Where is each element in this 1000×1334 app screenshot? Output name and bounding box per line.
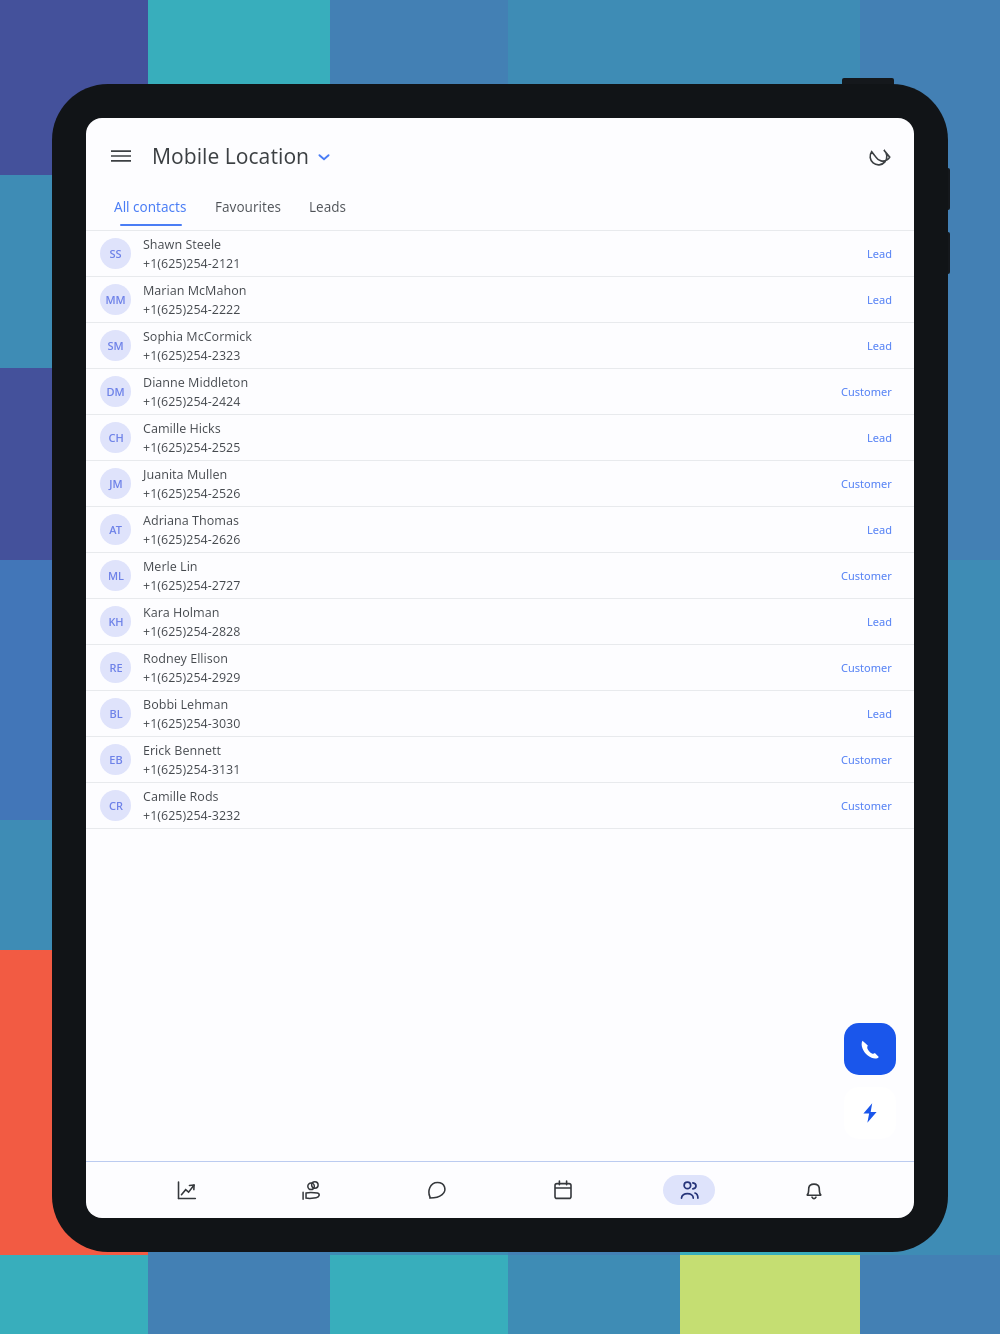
staticText: JM xyxy=(109,476,123,491)
staticText: Merle Lin xyxy=(143,558,198,575)
button[interactable]: MM xyxy=(86,277,914,323)
staticText: +1(625)254-3232 xyxy=(143,807,241,824)
staticText: RE xyxy=(109,660,123,675)
staticText: Lead xyxy=(867,430,892,445)
staticText: +1(625)254-2323 xyxy=(143,347,241,364)
button[interactable]: Analytics xyxy=(160,1175,212,1205)
button[interactable]: Calendar xyxy=(537,1175,589,1205)
staticText: BL xyxy=(109,706,123,721)
staticText: Customer xyxy=(841,476,892,491)
button[interactable]: SS xyxy=(86,231,914,277)
staticText: +1(625)254-2727 xyxy=(143,577,241,594)
button[interactable]: DM xyxy=(86,369,914,415)
staticText: Adriana Thomas xyxy=(143,512,239,529)
button[interactable]: Messages xyxy=(411,1175,463,1205)
staticText: CR xyxy=(109,798,123,813)
button[interactable]: Menu xyxy=(104,139,138,173)
button[interactable]: CH xyxy=(86,415,914,461)
staticText: Dianne Middleton xyxy=(143,374,249,391)
staticText: Bobbi Lehman xyxy=(143,696,229,713)
staticText: Shawn Steele xyxy=(143,236,222,253)
staticText: +1(625)254-3030 xyxy=(143,715,241,732)
staticText: Customer xyxy=(841,660,892,675)
button[interactable]: Favourites xyxy=(207,194,289,230)
staticText: Lead xyxy=(867,338,892,353)
staticText: Lead xyxy=(867,246,892,261)
staticText: +1(625)254-2121 xyxy=(143,255,241,272)
button[interactable]: CR xyxy=(86,783,914,829)
staticText: Sophia McCormick xyxy=(143,328,252,345)
button[interactable]: Deals xyxy=(285,1175,337,1205)
staticText: SM xyxy=(107,338,124,353)
staticText: Customer xyxy=(841,568,892,583)
staticText: Camille Rods xyxy=(143,788,219,805)
staticText: +1(625)254-2626 xyxy=(143,531,241,548)
staticText: DM xyxy=(106,384,125,399)
staticText: Marian McMahon xyxy=(143,282,247,299)
staticText: +1(625)254-2424 xyxy=(143,393,241,410)
button[interactable]: SM xyxy=(86,323,914,369)
staticText: Customer xyxy=(841,752,892,767)
button[interactable]: KH xyxy=(86,599,914,645)
staticText: Leads xyxy=(309,198,347,216)
staticText: +1(625)254-2525 xyxy=(143,439,241,456)
button[interactable]: ML xyxy=(86,553,914,599)
staticText: +1(625)254-2929 xyxy=(143,669,241,686)
button[interactable]: Dark mode xyxy=(860,138,896,174)
button[interactable]: RE xyxy=(86,645,914,691)
staticText: +1(625)254-2526 xyxy=(143,485,241,502)
staticText: CH xyxy=(108,430,124,445)
staticText: All contacts xyxy=(114,198,187,216)
staticText: Camille Hicks xyxy=(143,420,221,437)
button[interactable]: JM xyxy=(86,461,914,507)
staticText: Erick Bennett xyxy=(143,742,221,759)
staticText: Kara Holman xyxy=(143,604,220,621)
staticText: EB xyxy=(109,752,123,767)
staticText: Lead xyxy=(867,614,892,629)
staticText: KH xyxy=(108,614,124,629)
button[interactable]: EB xyxy=(86,737,914,783)
staticText: Customer xyxy=(841,798,892,813)
button[interactable]: BL xyxy=(86,691,914,737)
staticText: +1(625)254-3131 xyxy=(143,761,241,778)
staticText: Mobile Location xyxy=(152,142,310,171)
button[interactable]: Mobile Location xyxy=(152,142,331,171)
button[interactable]: AT xyxy=(86,507,914,553)
staticText: Lead xyxy=(867,522,892,537)
button[interactable]: Call xyxy=(844,1023,896,1075)
button[interactable]: All contacts xyxy=(106,194,195,230)
staticText: ML xyxy=(108,568,124,583)
staticText: Rodney Ellison xyxy=(143,650,229,667)
staticText: +1(625)254-2222 xyxy=(143,301,241,318)
button[interactable]: Leads xyxy=(301,194,355,230)
staticText: SS xyxy=(109,246,122,261)
staticText: AT xyxy=(109,522,122,537)
staticText: +1(625)254-2828 xyxy=(143,623,241,640)
staticText: Customer xyxy=(841,384,892,399)
staticText: Lead xyxy=(867,706,892,721)
button[interactable]: Notifications xyxy=(788,1175,840,1205)
staticText: MM xyxy=(105,292,126,307)
staticText: Juanita Mullen xyxy=(143,466,228,483)
staticText: Favourites xyxy=(215,198,281,216)
button[interactable]: Contacts xyxy=(663,1175,715,1205)
staticText: Lead xyxy=(867,292,892,307)
button[interactable]: Quick actions xyxy=(844,1087,896,1139)
